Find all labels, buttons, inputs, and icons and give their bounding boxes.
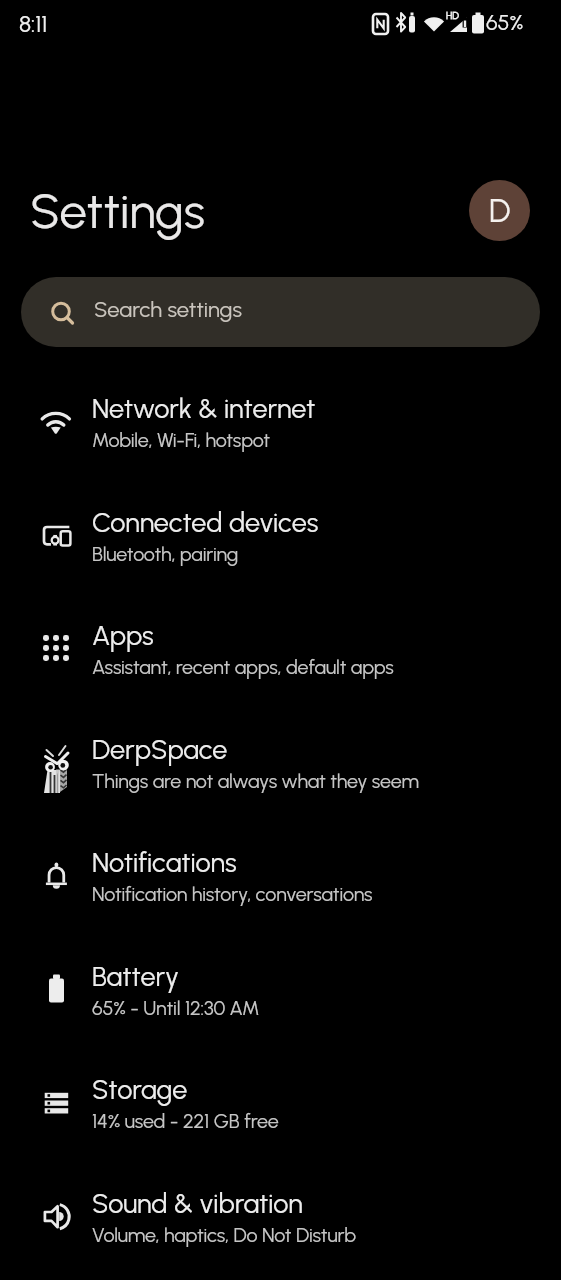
staticText: HD xyxy=(446,9,459,21)
staticText: Assistant, recent apps, default apps xyxy=(92,655,394,679)
button[interactable]: DerpSpace xyxy=(0,691,561,804)
staticText: Things are not always what they seem xyxy=(92,769,419,793)
button[interactable]: Apps xyxy=(0,577,561,690)
staticText: Battery xyxy=(92,960,179,992)
staticText: 14% used - 221 GB free xyxy=(92,1109,279,1133)
staticText: Settings xyxy=(30,181,205,240)
staticText: Storage xyxy=(92,1073,188,1105)
staticText: D xyxy=(489,192,511,230)
button[interactable]: Notifications xyxy=(0,804,561,917)
button[interactable]: Search settings xyxy=(21,277,540,347)
staticText: Notifications xyxy=(92,846,237,878)
staticText: Sound & vibration xyxy=(92,1187,303,1219)
staticText: 8:11 xyxy=(19,10,48,38)
button[interactable]: D xyxy=(469,180,530,241)
staticText: Mobile, Wi-Fi, hotspot xyxy=(92,428,270,452)
button[interactable]: Connected devices xyxy=(0,464,561,577)
staticText: Notification history, conversations xyxy=(92,882,373,906)
button[interactable]: Network & internet xyxy=(0,350,561,463)
staticText: 65% - Until 12:30 AM xyxy=(92,996,260,1020)
staticText: Apps xyxy=(92,619,154,651)
button[interactable]: Battery xyxy=(0,918,561,1031)
button[interactable]: Sound & vibration xyxy=(0,1145,561,1258)
staticText: Connected devices xyxy=(92,506,319,538)
staticText: Bluetooth, pairing xyxy=(92,542,239,566)
button[interactable]: Storage xyxy=(0,1031,561,1144)
staticText: Search settings xyxy=(94,296,242,322)
staticText: DerpSpace xyxy=(92,733,228,765)
staticText: Volume, haptics, Do Not Disturb xyxy=(92,1223,356,1247)
staticText: Network & internet xyxy=(92,392,316,424)
staticText: 65% xyxy=(486,10,524,36)
